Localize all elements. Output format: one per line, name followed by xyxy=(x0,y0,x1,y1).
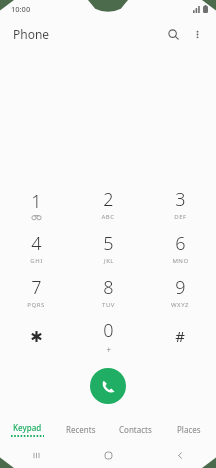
staticText: 7 xyxy=(31,275,42,300)
button[interactable]: 1 xyxy=(0,182,72,226)
staticText: ABC xyxy=(101,213,115,221)
button[interactable]: 5 xyxy=(72,226,144,270)
staticText: 1 xyxy=(31,189,42,214)
button[interactable]: Keypad xyxy=(0,416,54,442)
button[interactable]: 9 xyxy=(144,270,216,314)
staticText: 8 xyxy=(103,275,114,300)
staticText: 2 xyxy=(103,187,114,212)
button[interactable]: ✱ xyxy=(0,314,72,358)
staticText: Recents xyxy=(66,424,96,435)
staticText: 4 xyxy=(31,231,42,256)
button[interactable]: Places xyxy=(162,416,216,442)
staticText: 6 xyxy=(175,231,186,256)
staticText: PQRS xyxy=(27,301,45,309)
staticText: Phone xyxy=(13,26,50,42)
staticText: Keypad xyxy=(13,422,42,433)
staticText: JKL xyxy=(104,257,114,265)
staticText: 10:00 xyxy=(11,4,31,14)
button[interactable]: 4 xyxy=(0,226,72,270)
staticText: WXYZ xyxy=(171,301,189,309)
button[interactable]: 7 xyxy=(0,270,72,314)
staticText: 3 xyxy=(175,187,186,212)
staticText: MNO xyxy=(172,257,189,265)
staticText: DEF xyxy=(174,213,187,221)
staticText: 0 xyxy=(103,318,114,343)
button[interactable]: Contacts xyxy=(108,416,162,442)
staticText: + xyxy=(106,344,112,355)
staticText: # xyxy=(175,326,185,346)
button[interactable]: 0 xyxy=(72,314,144,358)
staticText: GHI xyxy=(30,257,43,265)
button[interactable]: 8 xyxy=(72,270,144,314)
button[interactable]: Home xyxy=(72,442,144,468)
button[interactable]: More options xyxy=(185,22,209,46)
button[interactable]: Recents xyxy=(54,416,108,442)
button[interactable]: Recent apps xyxy=(0,442,72,468)
button[interactable]: Call xyxy=(90,368,126,404)
button[interactable]: Back xyxy=(144,442,216,468)
button[interactable]: 3 xyxy=(144,182,216,226)
staticText: 5 xyxy=(103,231,114,256)
button[interactable]: 2 xyxy=(72,182,144,226)
staticText: TUV xyxy=(102,301,115,309)
button[interactable]: Search xyxy=(161,22,185,46)
button[interactable]: # xyxy=(144,314,216,358)
button[interactable]: 6 xyxy=(144,226,216,270)
staticText: ✱ xyxy=(30,328,43,345)
staticText: Places xyxy=(177,424,201,435)
staticText: Contacts xyxy=(119,424,152,435)
staticText: 9 xyxy=(175,275,186,300)
